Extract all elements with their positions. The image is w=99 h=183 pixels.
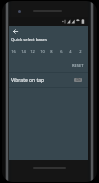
staticText: RESET [72,63,84,68]
button[interactable]: 2 [76,48,84,55]
staticText: Quick select bases [11,37,47,43]
button[interactable]: Vibrate on tap [9,73,88,87]
button[interactable]: 8 [47,48,55,55]
staticText: Vibrate on tap [11,77,45,84]
button[interactable]: 10 [38,48,46,55]
button[interactable]: 12 [28,48,36,55]
staticText: 8 [50,49,53,54]
staticText: 4 [69,49,72,54]
staticText: 14 [21,49,26,54]
staticText: 10 [40,49,45,54]
staticText: 2 [79,49,82,54]
staticText: 6 [60,49,63,54]
button[interactable]: 6 [57,48,65,55]
button[interactable]: 16 [9,48,17,55]
staticText: 16 [11,49,16,54]
button[interactable]: RESET [71,61,85,70]
button[interactable]: 4 [66,48,74,55]
staticText: ON [76,78,81,82]
button[interactable]: Navigate up [10,26,21,37]
staticText: 12 [30,49,35,54]
button[interactable]: 14 [19,48,27,55]
